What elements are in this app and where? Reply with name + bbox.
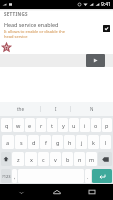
button[interactable]: , — [12, 169, 17, 183]
staticText: the — [17, 106, 24, 112]
button[interactable]: Send — [86, 54, 105, 67]
button[interactable]: r — [36, 118, 46, 132]
staticText: j — [81, 139, 83, 146]
button[interactable]: Backspace — [98, 152, 112, 166]
button[interactable]: I — [41, 102, 70, 116]
button[interactable]: k — [88, 135, 99, 149]
staticText: t — [51, 122, 53, 129]
staticText: a — [6, 139, 10, 146]
staticText: w — [16, 122, 21, 129]
staticText: It allows to enable or disable the head … — [4, 29, 71, 39]
button[interactable]: n — [74, 152, 85, 166]
button[interactable]: the — [0, 102, 40, 116]
staticText: . — [87, 173, 89, 180]
staticText: N — [90, 106, 94, 112]
button[interactable]: h — [64, 135, 75, 149]
button[interactable]: Back — [14, 185, 28, 199]
button[interactable]: b — [62, 152, 73, 166]
button[interactable]: Recents — [85, 185, 99, 199]
button[interactable]: p — [102, 118, 112, 132]
button[interactable]: g — [52, 135, 63, 149]
button[interactable]: i — [80, 118, 90, 132]
staticText: o — [94, 122, 98, 129]
button[interactable]: u — [69, 118, 79, 132]
button[interactable]: Home — [50, 185, 64, 199]
button[interactable]: q — [1, 118, 12, 132]
button[interactable]: Shift — [1, 152, 11, 166]
staticText: s — [20, 139, 23, 146]
staticText: z — [17, 156, 20, 163]
staticText: k — [92, 139, 95, 146]
button[interactable]: t — [47, 118, 57, 132]
staticText: n — [78, 156, 82, 163]
staticText: 9:41 — [101, 1, 111, 8]
staticText: c — [42, 156, 45, 163]
button[interactable]: Head service enabled — [0, 21, 113, 41]
button[interactable]: Enter — [92, 169, 112, 183]
button[interactable]: Head service enabled toggle — [103, 25, 110, 32]
button[interactable]: j — [76, 135, 87, 149]
button[interactable]: y — [58, 118, 68, 132]
staticText: b — [66, 156, 70, 163]
button[interactable]: N — [71, 102, 113, 116]
staticText: u — [72, 122, 76, 129]
button[interactable]: x — [25, 152, 37, 166]
button[interactable]: c — [38, 152, 49, 166]
button[interactable]: f — [40, 135, 51, 149]
button[interactable]: v — [50, 152, 61, 166]
staticText: y — [62, 122, 65, 129]
staticText: x — [30, 156, 33, 163]
staticText: , — [14, 173, 16, 180]
button[interactable]: d — [28, 135, 39, 149]
staticText: r — [40, 122, 43, 129]
button[interactable]: s — [15, 135, 27, 149]
button[interactable]: a — [2, 135, 14, 149]
button[interactable]: w — [13, 118, 24, 132]
button[interactable]: m — [86, 152, 97, 166]
button[interactable]: SETTINGS — [0, 9, 113, 21]
button[interactable]: z — [12, 152, 24, 166]
staticText: q — [5, 122, 9, 129]
staticText: f — [45, 139, 47, 146]
staticText: I — [55, 106, 57, 112]
staticText: d — [32, 139, 36, 146]
button[interactable]: o — [91, 118, 101, 132]
staticText: i — [84, 122, 86, 129]
staticText: e — [28, 122, 32, 129]
button[interactable]: ?123 — [1, 169, 11, 183]
staticText: m — [89, 156, 95, 163]
staticText: p — [105, 122, 109, 129]
button[interactable]: . — [85, 169, 91, 183]
staticText: l — [105, 139, 107, 146]
button[interactable]: l — [100, 135, 111, 149]
button[interactable]: e — [25, 118, 35, 132]
staticText: ?123 — [2, 174, 11, 179]
staticText: v — [54, 156, 57, 163]
staticText: Head service enabled — [4, 21, 59, 28]
staticText: h — [68, 139, 72, 146]
staticText: g — [56, 139, 60, 146]
staticText: SETTINGS — [4, 11, 28, 17]
